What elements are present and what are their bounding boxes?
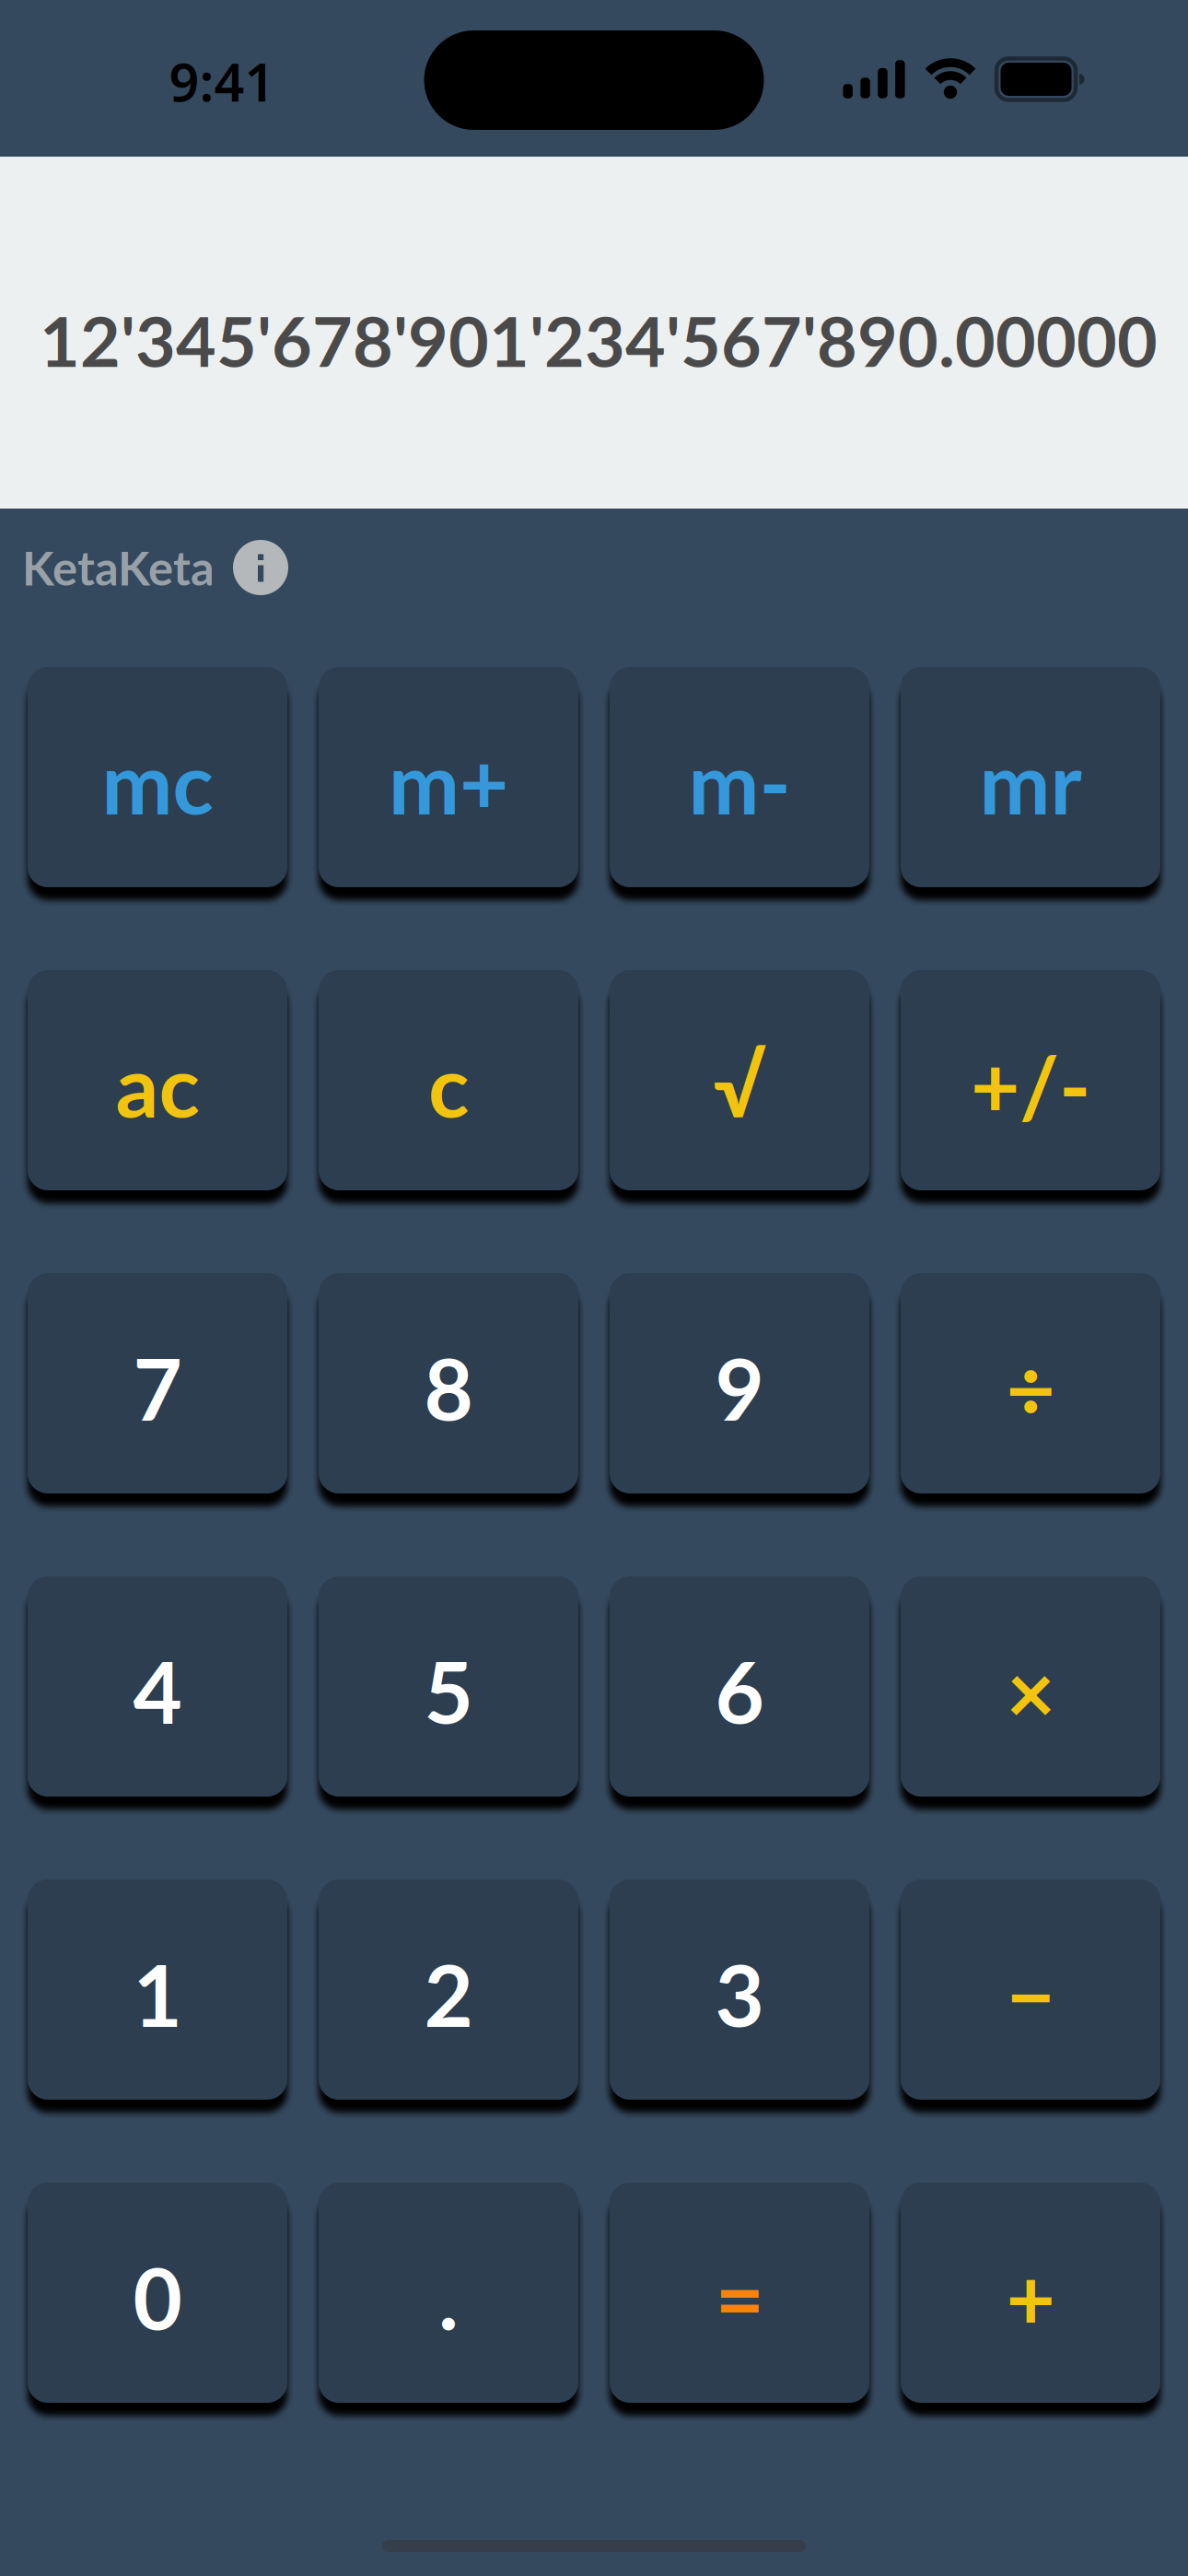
button[interactable]: √ — [610, 970, 869, 1190]
staticText: KetaKeta — [22, 540, 215, 596]
staticText: 3 — [715, 1943, 764, 2045]
staticText: 8 — [424, 1337, 473, 1439]
staticText: 0 — [133, 2246, 182, 2348]
staticText: 2 — [424, 1943, 473, 2045]
button[interactable]: 8 — [319, 1273, 578, 1493]
button[interactable]: + — [901, 2183, 1160, 2403]
staticText: 6 — [715, 1640, 764, 1742]
button[interactable]: 4 — [28, 1576, 287, 1797]
button[interactable]: ac — [28, 970, 287, 1190]
staticText: 4 — [133, 1640, 182, 1742]
button[interactable]: × — [901, 1576, 1160, 1797]
button[interactable]: . — [319, 2183, 578, 2403]
button[interactable]: 6 — [610, 1576, 869, 1797]
staticText: 5 — [424, 1640, 473, 1742]
staticText: √ — [713, 1034, 766, 1136]
staticText: c — [428, 1034, 469, 1136]
button[interactable]: 3 — [610, 1879, 869, 2100]
staticText: mc — [102, 731, 213, 833]
staticText: +/- — [971, 1034, 1090, 1136]
staticText: × — [1006, 1640, 1055, 1742]
staticText: 9 — [715, 1337, 764, 1439]
button[interactable]: mr — [901, 667, 1160, 887]
button[interactable]: 0 — [28, 2183, 287, 2403]
button[interactable]: Info — [233, 540, 288, 595]
staticText: = — [715, 2246, 764, 2348]
button[interactable]: mc — [28, 667, 287, 887]
staticText: 12'345'678'901'234'567'890.00000 — [40, 298, 1158, 382]
button[interactable]: +/- — [901, 970, 1160, 1190]
button[interactable]: c — [319, 970, 578, 1190]
button[interactable]: 7 — [28, 1273, 287, 1493]
staticText: − — [1006, 1943, 1055, 2045]
staticText: 1 — [133, 1943, 182, 2045]
staticText: + — [1006, 2246, 1055, 2348]
staticText: . — [438, 2246, 459, 2348]
button[interactable]: = — [610, 2183, 869, 2403]
button[interactable]: − — [901, 1879, 1160, 2100]
button[interactable]: m+ — [319, 667, 578, 887]
staticText: ac — [116, 1034, 199, 1136]
button[interactable]: 2 — [319, 1879, 578, 2100]
staticText: m+ — [389, 731, 508, 833]
staticText: ÷ — [1006, 1337, 1055, 1439]
staticText: mr — [979, 731, 1082, 833]
button[interactable]: ÷ — [901, 1273, 1160, 1493]
button[interactable]: 5 — [319, 1576, 578, 1797]
button[interactable]: m- — [610, 667, 869, 887]
staticText: m- — [688, 731, 791, 833]
staticText: 7 — [133, 1337, 182, 1439]
button[interactable]: 1 — [28, 1879, 287, 2100]
button[interactable]: 9 — [610, 1273, 869, 1493]
staticText: 9:41 — [169, 46, 275, 116]
